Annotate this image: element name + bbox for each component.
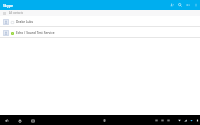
button[interactable]: Add contact (168, 1, 176, 9)
staticText: All contacts (9, 11, 23, 15)
button[interactable]: Video call (184, 1, 192, 9)
button[interactable]: Drake Lubs (0, 16, 200, 27)
button[interactable]: All contacts (0, 10, 200, 16)
button[interactable]: Home (15, 116, 24, 125)
button[interactable]: Notifications (101, 117, 108, 124)
button[interactable]: Recent apps (28, 116, 37, 125)
button[interactable]: Search (176, 1, 184, 9)
button[interactable]: More options (192, 1, 200, 9)
staticText: Echo / Sound Test Service (16, 31, 55, 35)
button[interactable]: Echo / Sound Test Service (0, 27, 200, 38)
button[interactable]: Back (2, 116, 11, 125)
staticText: Drake Lubs (16, 20, 34, 24)
staticText: Skype (3, 3, 14, 8)
